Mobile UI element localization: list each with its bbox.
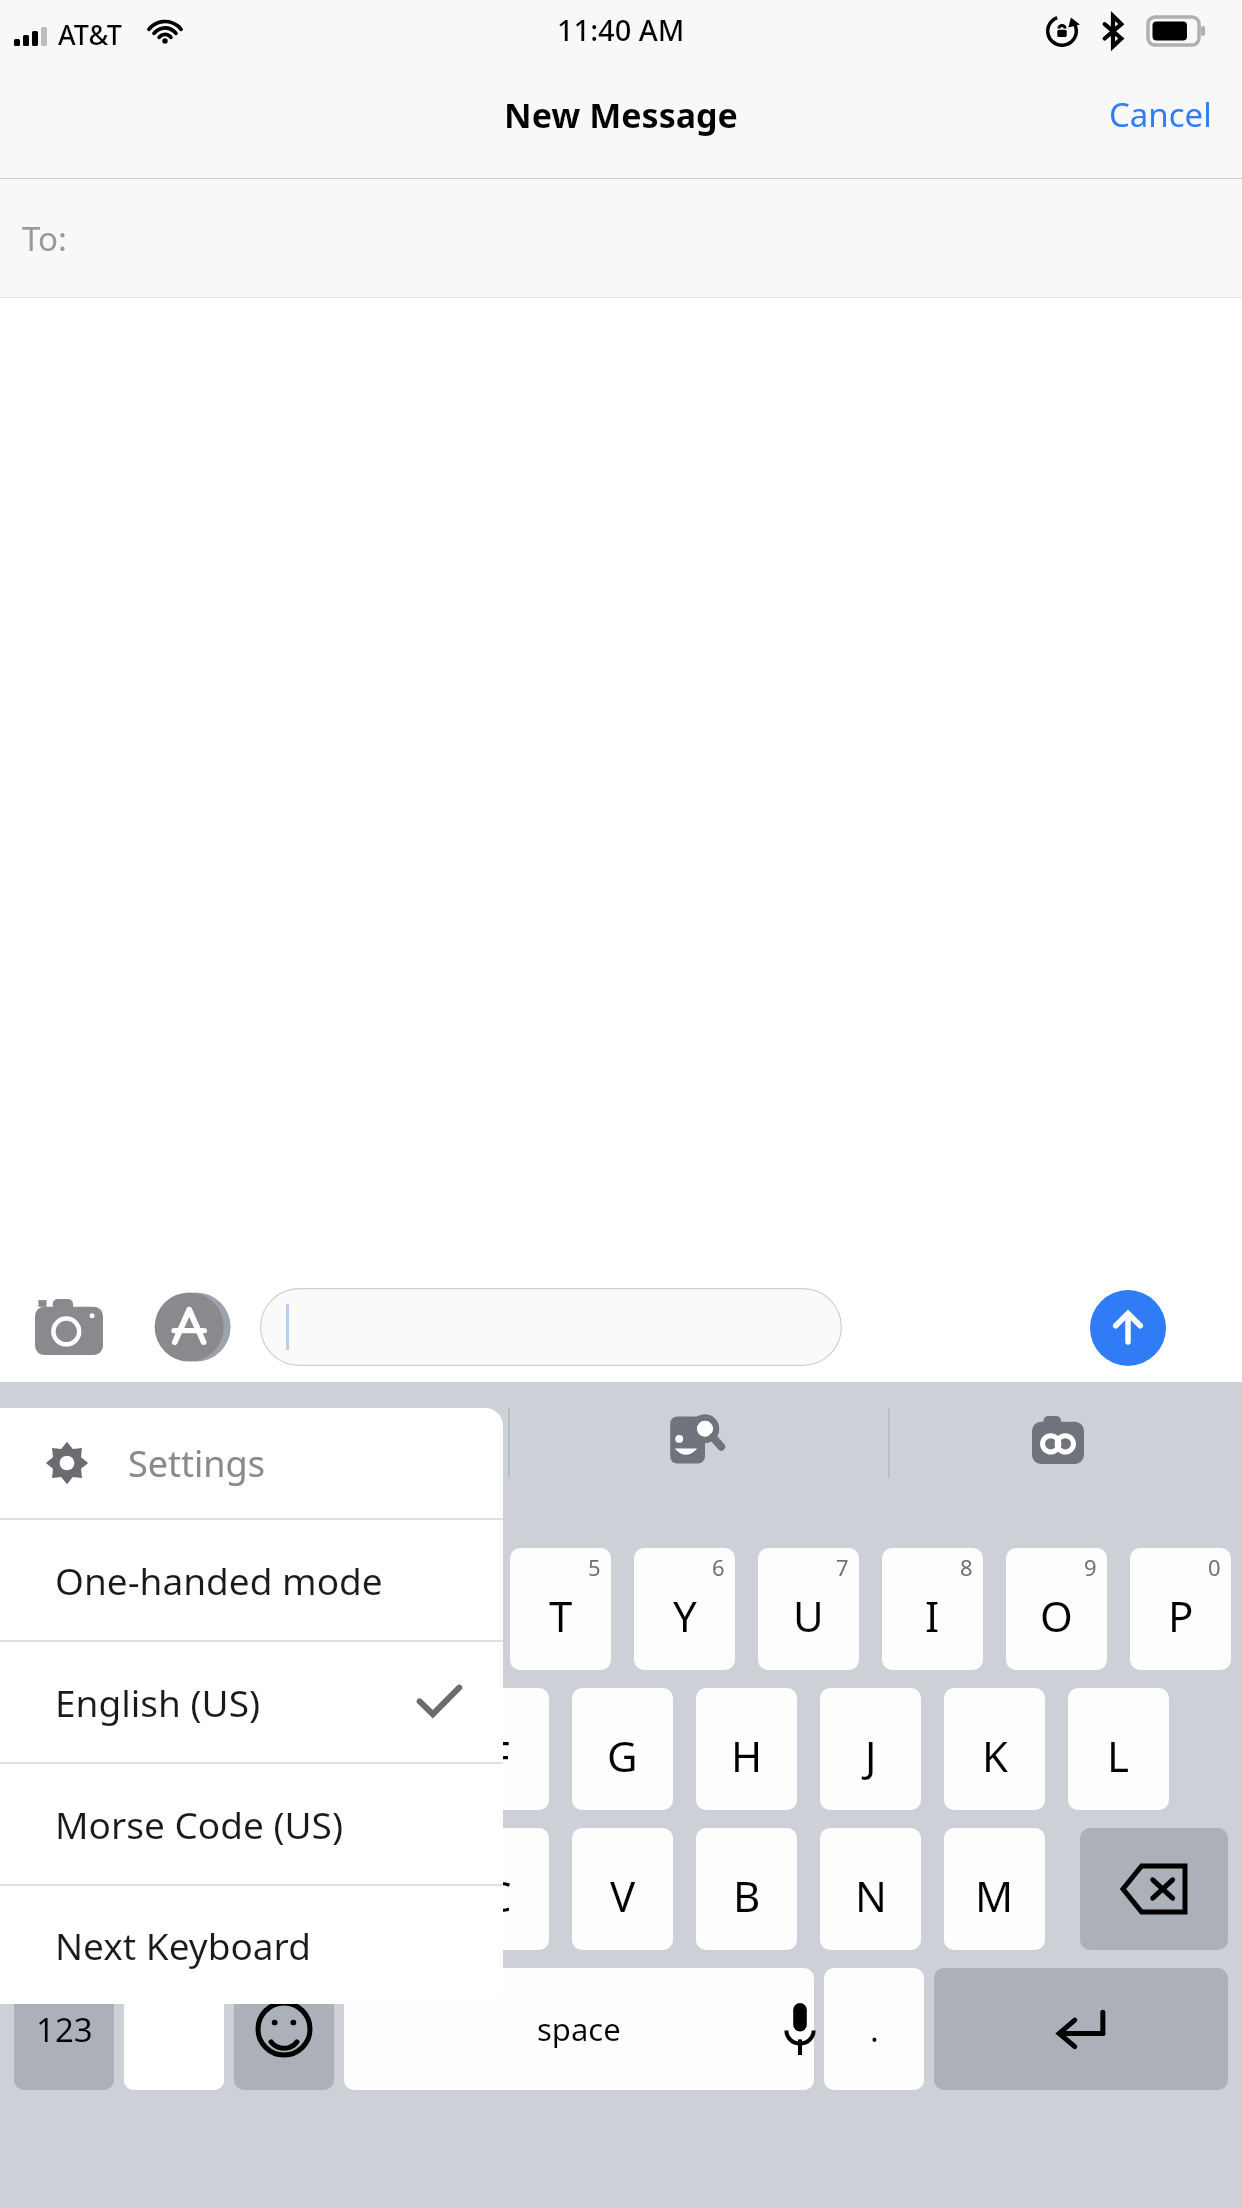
button[interactable]: J [820, 1688, 921, 1810]
staticText: AT&T [58, 16, 122, 53]
staticText: M [975, 1867, 1014, 1924]
staticText: 6 [712, 1552, 725, 1582]
staticText: N [855, 1867, 887, 1924]
staticText: Q [48, 1587, 81, 1644]
button[interactable]: Send [1090, 1290, 1166, 1366]
button[interactable]: To: [0, 179, 1242, 297]
staticText: D [359, 1727, 390, 1784]
staticText: Morse Code (US) [55, 1799, 344, 1849]
button[interactable]: H [696, 1688, 797, 1810]
button[interactable]: O [1006, 1548, 1107, 1670]
button[interactable]: D [324, 1688, 425, 1810]
staticText: 0 [1208, 1552, 1221, 1582]
staticText: One-handed mode [55, 1555, 383, 1605]
staticText: . [870, 2007, 879, 2052]
staticText: 123 [36, 2007, 93, 2052]
button[interactable]: G [572, 1688, 673, 1810]
staticText: 8 [960, 1552, 973, 1582]
button[interactable]: F [448, 1688, 549, 1810]
button[interactable]: X [324, 1828, 425, 1950]
button[interactable]: R [386, 1548, 487, 1670]
button[interactable]: Q [14, 1548, 115, 1670]
staticText: T [549, 1587, 573, 1644]
button[interactable]: C [448, 1828, 549, 1950]
button[interactable]: I [882, 1548, 983, 1670]
staticText: P [1168, 1587, 1194, 1644]
staticText: English (US) [55, 1677, 261, 1727]
button[interactable]: Next Keyboard [0, 1886, 503, 2004]
staticText: X [362, 1867, 387, 1924]
button[interactable]: English (US) [0, 1642, 503, 1762]
button[interactable]: Next keyboard [124, 1968, 224, 2090]
staticText: 11:40 AM [557, 10, 685, 49]
staticText: U [793, 1587, 824, 1644]
staticText: 3 [340, 1552, 353, 1582]
button[interactable]: B [696, 1828, 797, 1950]
button[interactable]: Cancel [1079, 82, 1242, 147]
staticText: Z [238, 1867, 263, 1924]
staticText: I [925, 1587, 940, 1644]
staticText: K [982, 1727, 1008, 1784]
staticText: O [1040, 1587, 1073, 1644]
button[interactable]: Memoji search [660, 1404, 732, 1476]
staticText: G [607, 1727, 638, 1784]
staticText: J [865, 1727, 877, 1784]
button[interactable]: E [262, 1548, 363, 1670]
button[interactable]: M [944, 1828, 1045, 1950]
staticText: 9 [1084, 1552, 1097, 1582]
staticText: Next Keyboard [55, 1920, 311, 1970]
staticText: W [169, 1587, 209, 1644]
button[interactable]: A [76, 1688, 177, 1810]
staticText: L [1107, 1727, 1130, 1784]
staticText: F [488, 1727, 510, 1784]
button[interactable]: Backspace [1080, 1828, 1228, 1950]
staticText: 2 [216, 1552, 229, 1582]
staticText: S [239, 1727, 263, 1784]
staticText: 7 [836, 1552, 849, 1582]
button[interactable]: App Store [148, 1284, 234, 1370]
staticText: 1 [92, 1552, 105, 1582]
button[interactable]: Photo effects [1022, 1404, 1094, 1476]
button[interactable]: U [758, 1548, 859, 1670]
staticText: E [301, 1587, 325, 1644]
button[interactable]: W [138, 1548, 239, 1670]
button[interactable]: Morse Code (US) [0, 1764, 503, 1884]
staticText: B [733, 1867, 761, 1924]
button[interactable]: T [510, 1548, 611, 1670]
button[interactable]: . [824, 1968, 924, 2090]
button[interactable] [260, 1288, 842, 1366]
button[interactable]: Shift [14, 1828, 162, 1950]
button[interactable]: V [572, 1828, 673, 1950]
button[interactable]: L [1068, 1688, 1169, 1810]
staticText: Y [673, 1587, 697, 1644]
staticText: V [610, 1867, 636, 1924]
button[interactable]: Return [934, 1968, 1228, 2090]
staticText: New Message [504, 92, 738, 138]
staticText: To: [22, 216, 67, 261]
staticText: 5 [588, 1552, 601, 1582]
staticText: space [537, 2008, 621, 2050]
staticText: Settings [128, 1439, 265, 1488]
button[interactable]: Emoji [234, 1968, 334, 2090]
staticText: Cancel [1109, 92, 1212, 137]
button[interactable]: space [344, 1968, 814, 2090]
button[interactable]: Camera [26, 1284, 112, 1370]
button[interactable]: N [820, 1828, 921, 1950]
button[interactable]: Settings [0, 1408, 503, 1518]
staticText: C [485, 1867, 512, 1924]
button[interactable]: Y [634, 1548, 735, 1670]
button[interactable]: K [944, 1688, 1045, 1810]
button[interactable]: Dictation [760, 1968, 840, 2090]
button[interactable]: 123 [14, 1968, 114, 2090]
button[interactable]: One-handed mode [0, 1520, 503, 1640]
staticText: R [423, 1587, 450, 1644]
button[interactable]: P [1130, 1548, 1231, 1670]
staticText: A [113, 1727, 140, 1784]
button[interactable]: Z [200, 1828, 301, 1950]
staticText: H [731, 1727, 763, 1784]
button[interactable]: S [200, 1688, 301, 1810]
